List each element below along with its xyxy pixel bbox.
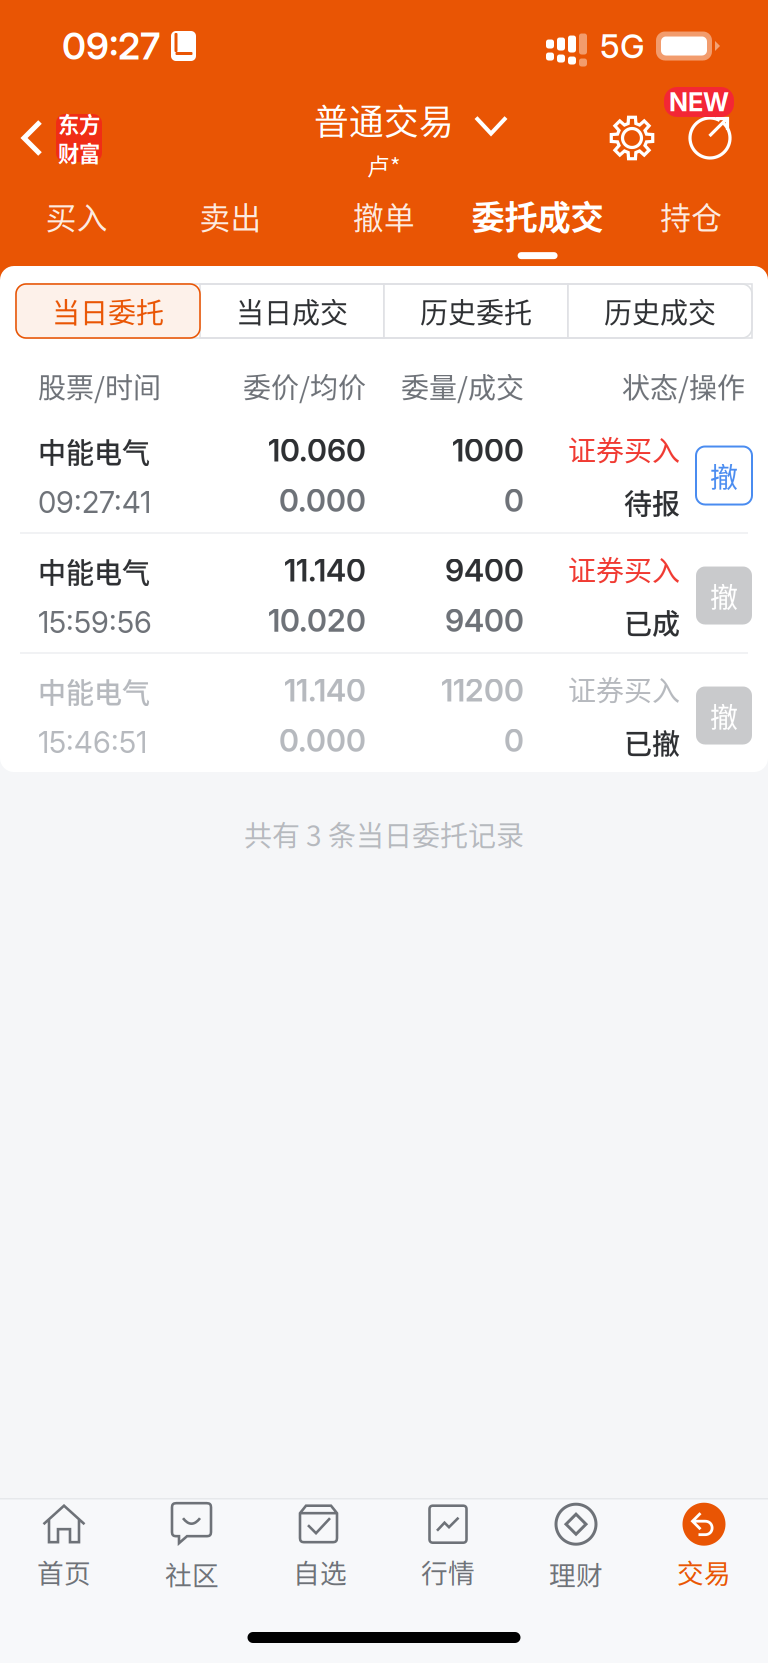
- staticText: 证券买入: [568, 548, 680, 589]
- staticText: 待报: [624, 482, 680, 522]
- staticText: 中能电气: [38, 551, 150, 591]
- staticText: 中能电气: [38, 671, 150, 711]
- button[interactable]: 行情: [384, 1510, 512, 1584]
- staticText: 11200: [441, 672, 524, 709]
- staticText: 共有 3 条当日委托记录: [244, 814, 524, 854]
- staticText: 10.020: [268, 602, 366, 639]
- staticText: 买入: [46, 194, 108, 238]
- staticText: 东方: [58, 108, 100, 139]
- staticText: 已撤: [624, 722, 680, 762]
- staticText: 撤: [710, 695, 738, 736]
- button[interactable]: 撤单: [307, 184, 461, 266]
- button[interactable]: 委托成交: [461, 184, 614, 266]
- button[interactable]: 卖出: [154, 184, 307, 266]
- staticText: 普通交易: [314, 94, 454, 145]
- button[interactable]: 交易: [640, 1510, 768, 1584]
- staticText: 卢*: [367, 149, 401, 181]
- staticText: 已成: [624, 602, 680, 642]
- button[interactable]: 首页: [0, 1510, 128, 1584]
- staticText: 行情: [421, 1552, 475, 1591]
- button[interactable]: 历史委托: [384, 284, 568, 338]
- staticText: 历史委托: [420, 291, 532, 331]
- staticText: 股票/时间: [38, 366, 161, 406]
- button[interactable]: 退出: [688, 114, 734, 162]
- staticText: 社区: [165, 1554, 219, 1593]
- staticText: 撤: [710, 455, 738, 496]
- staticText: 5G: [600, 26, 645, 66]
- button[interactable]: 设置: [609, 115, 655, 161]
- button[interactable]: 买入: [0, 184, 154, 266]
- staticText: 证券买入: [568, 428, 680, 469]
- staticText: 持仓: [660, 194, 722, 238]
- staticText: 0.000: [279, 482, 366, 519]
- button[interactable]: 历史成交: [568, 284, 752, 338]
- staticText: 历史成交: [604, 291, 716, 331]
- staticText: 卖出: [199, 194, 261, 238]
- staticText: 中能电气: [38, 431, 150, 471]
- button[interactable]: 当日委托: [16, 284, 200, 338]
- staticText: 自选: [293, 1552, 347, 1591]
- button[interactable]: 撤: [696, 446, 752, 504]
- staticText: 15:59:56: [38, 604, 152, 640]
- staticText: 委托成交: [472, 191, 604, 239]
- button[interactable]: [16, 284, 200, 338]
- staticText: 09:27: [62, 23, 160, 69]
- staticText: 09:27:41: [38, 484, 151, 520]
- button[interactable]: 撤: [696, 566, 752, 624]
- staticText: 撤单: [353, 194, 415, 238]
- staticText: 10.060: [268, 432, 366, 469]
- button[interactable]: 持仓: [614, 184, 768, 266]
- button[interactable]: 当日成交: [200, 284, 384, 338]
- button[interactable]: 撤: [696, 686, 752, 744]
- staticText: 理财: [549, 1554, 603, 1593]
- button[interactable]: 社区: [128, 1510, 256, 1584]
- staticText: 15:46:51: [38, 724, 147, 760]
- button[interactable]: 普通交易: [264, 92, 504, 184]
- staticText: 财富: [58, 137, 100, 168]
- staticText: 9400: [445, 552, 524, 589]
- staticText: 0: [504, 722, 524, 759]
- staticText: 撤: [710, 575, 738, 616]
- staticText: 当日委托: [52, 291, 164, 331]
- staticText: 9400: [445, 602, 524, 639]
- staticText: 委量/成交: [401, 366, 524, 406]
- button[interactable]: 东方: [0, 92, 112, 184]
- staticText: 证券买入: [568, 668, 680, 709]
- button[interactable]: 理财: [512, 1510, 640, 1584]
- staticText: 11.140: [284, 552, 366, 589]
- staticText: 0: [504, 482, 524, 519]
- staticText: 状态/操作: [622, 366, 745, 406]
- staticText: 1000: [452, 432, 524, 469]
- staticText: 交易: [677, 1552, 731, 1591]
- staticText: 委价/均价: [243, 366, 366, 406]
- staticText: NEW: [669, 87, 729, 117]
- staticText: 11.140: [284, 672, 366, 709]
- staticText: 0.000: [279, 722, 366, 759]
- staticText: 当日成交: [236, 291, 348, 331]
- button[interactable]: 自选: [256, 1510, 384, 1584]
- staticText: 首页: [37, 1552, 91, 1591]
